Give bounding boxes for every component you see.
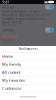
staticText: My Family <box>2 61 21 67</box>
staticText: Customize <box>2 85 21 91</box>
staticText: ▮▮▮ <box>44 0 47 3</box>
button[interactable]: Home <box>0 52 56 60</box>
staticText: All content <box>2 69 20 75</box>
staticText: Home <box>2 53 13 59</box>
button[interactable]: Customize <box>0 84 56 92</box>
staticText: Lorem ipsum dolor sit amet, consectetur … <box>2 10 51 24</box>
staticText: Alertas <box>2 4 15 10</box>
staticText: Sonido <box>2 27 13 33</box>
staticText: My Favorites <box>2 77 25 83</box>
button[interactable]: All content <box>0 68 56 76</box>
staticText: Mensaje <box>2 33 17 39</box>
staticText: 9:41 <box>2 0 9 5</box>
staticText: Opciones <box>2 23 15 27</box>
button[interactable]: My Favorites <box>0 76 56 84</box>
button[interactable]: Alertas <box>0 4 56 10</box>
staticText: Notificaciones <box>18 47 37 51</box>
button[interactable]: My Family <box>0 60 56 68</box>
button[interactable]: Sonido <box>0 27 56 33</box>
